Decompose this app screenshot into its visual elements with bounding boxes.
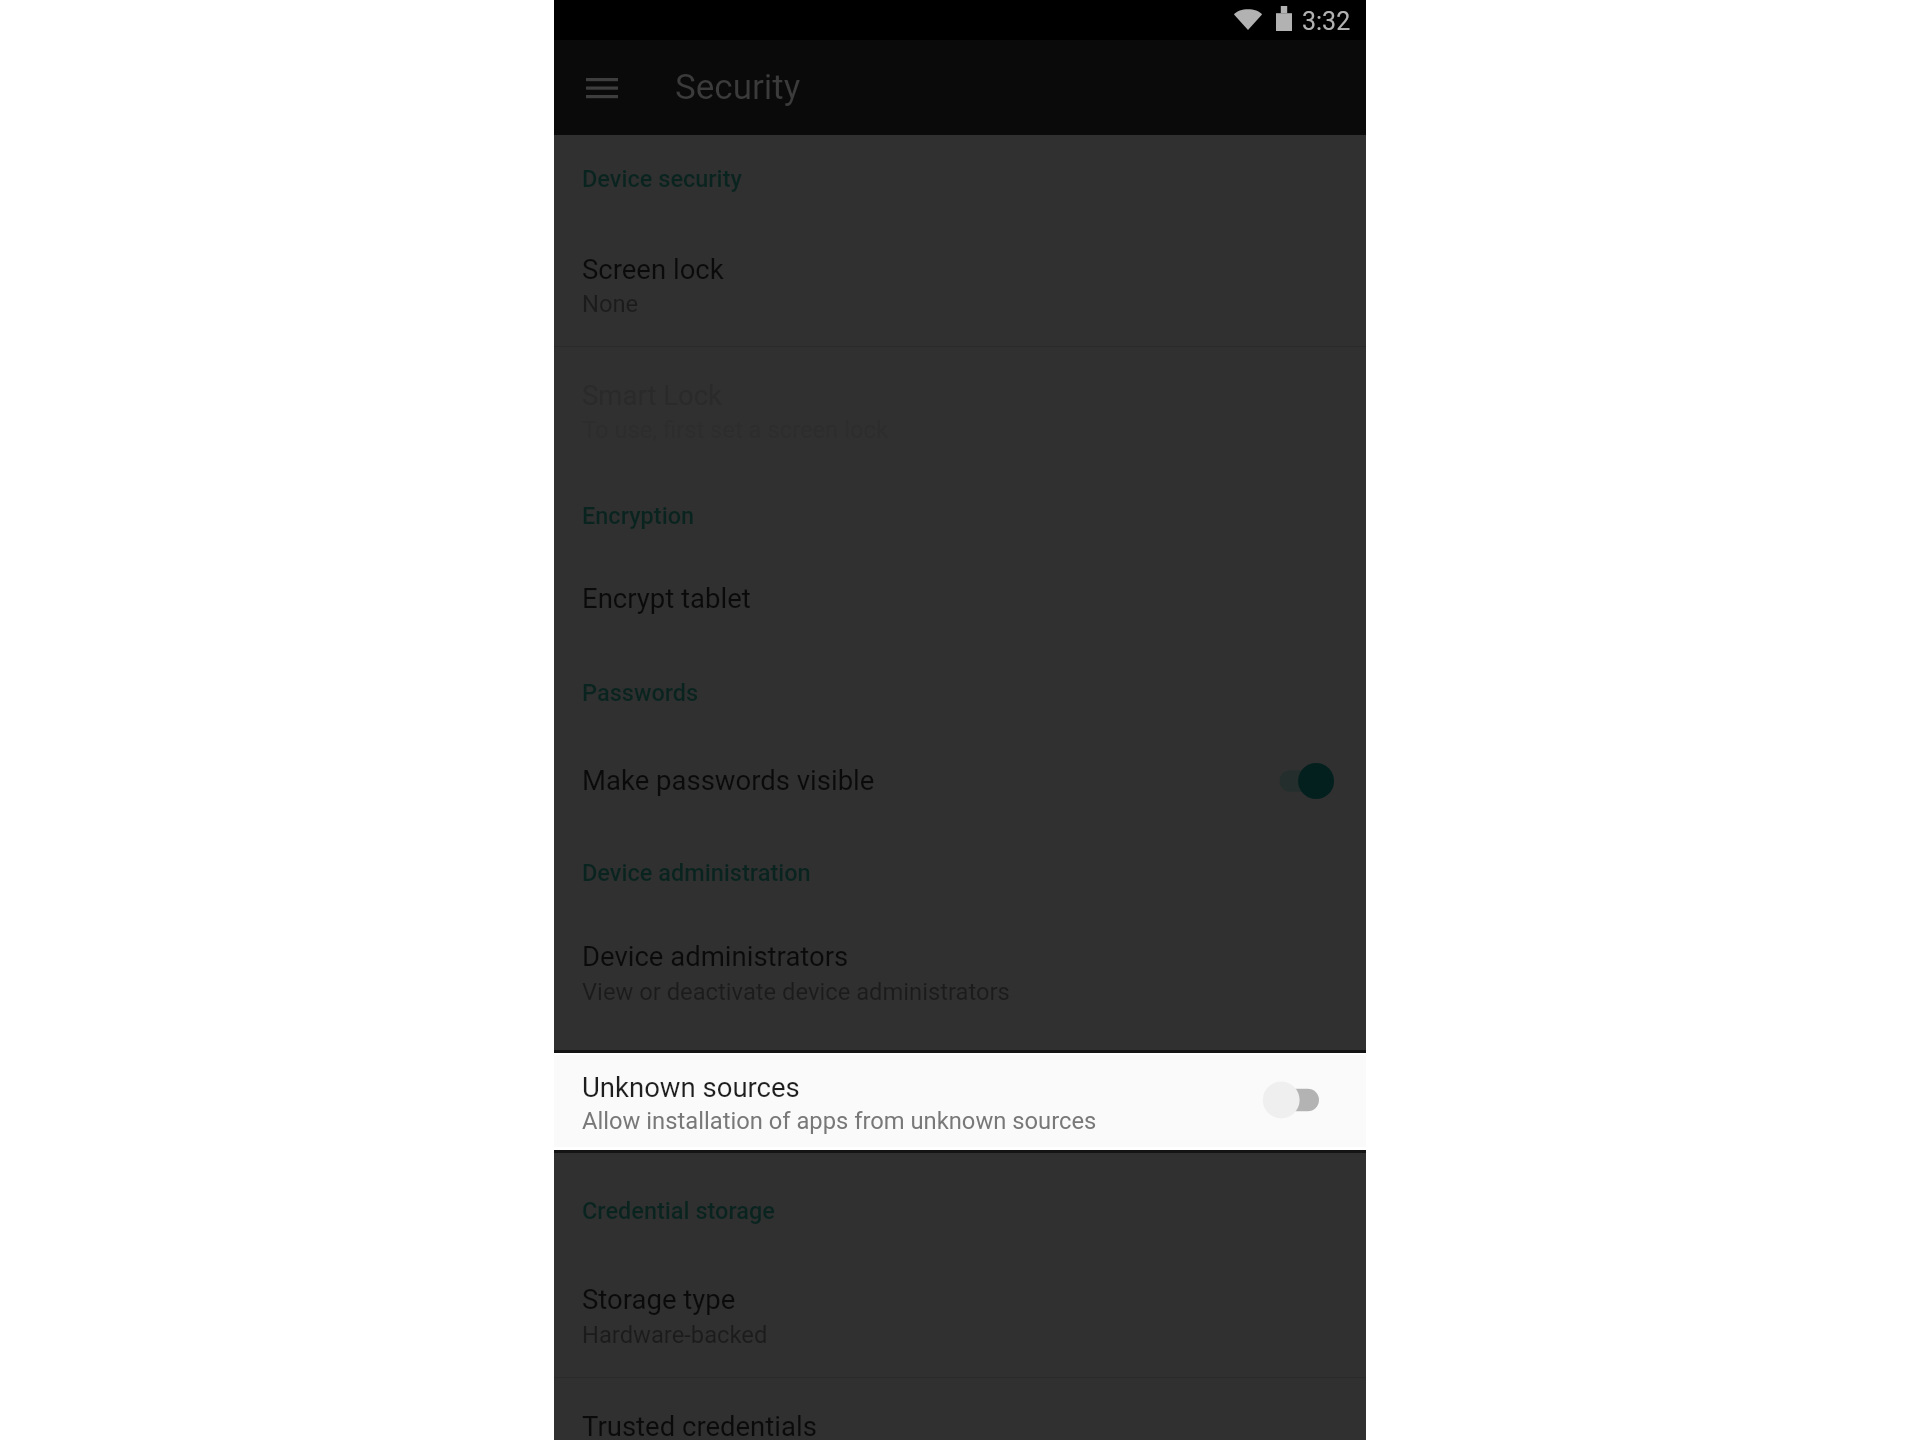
button[interactable]: Encrypt tablet <box>554 541 1366 649</box>
staticText: Passwords <box>582 679 699 707</box>
button[interactable]: Make passwords visible, on <box>1272 757 1344 805</box>
button[interactable]: Trusted credentials <box>554 1378 1366 1440</box>
staticText: Encryption <box>582 502 695 530</box>
staticText: 3:32 <box>1302 7 1351 36</box>
staticText: Trusted credentials <box>582 1410 817 1440</box>
staticText: Device administrators <box>582 940 849 972</box>
staticText: Encrypt tablet <box>582 582 751 614</box>
staticText: Credential storage <box>582 1197 775 1225</box>
staticText: Make passwords visible <box>582 764 875 796</box>
button[interactable]: Open navigation drawer <box>560 46 644 130</box>
button[interactable]: Storage type <box>554 1242 1366 1388</box>
staticText: Device security <box>582 165 742 193</box>
staticText: Unknown sources <box>582 1071 800 1103</box>
button[interactable]: Make passwords visible <box>554 724 1366 832</box>
staticText: Screen lock <box>582 253 724 285</box>
staticText: View or deactivate device administrators <box>582 978 1010 1006</box>
staticText: None <box>582 290 639 318</box>
staticText: Hardware-backed <box>582 1321 768 1349</box>
staticText: Storage type <box>582 1283 736 1315</box>
button[interactable]: Unknown sources, off <box>1254 1076 1326 1124</box>
button[interactable]: Unknown sources <box>554 1053 1366 1150</box>
button[interactable]: Device administrators <box>554 896 1366 1042</box>
staticText: Security <box>675 67 801 108</box>
staticText: Allow installation of apps from unknown … <box>582 1107 1097 1135</box>
staticText: Device administration <box>582 859 811 887</box>
